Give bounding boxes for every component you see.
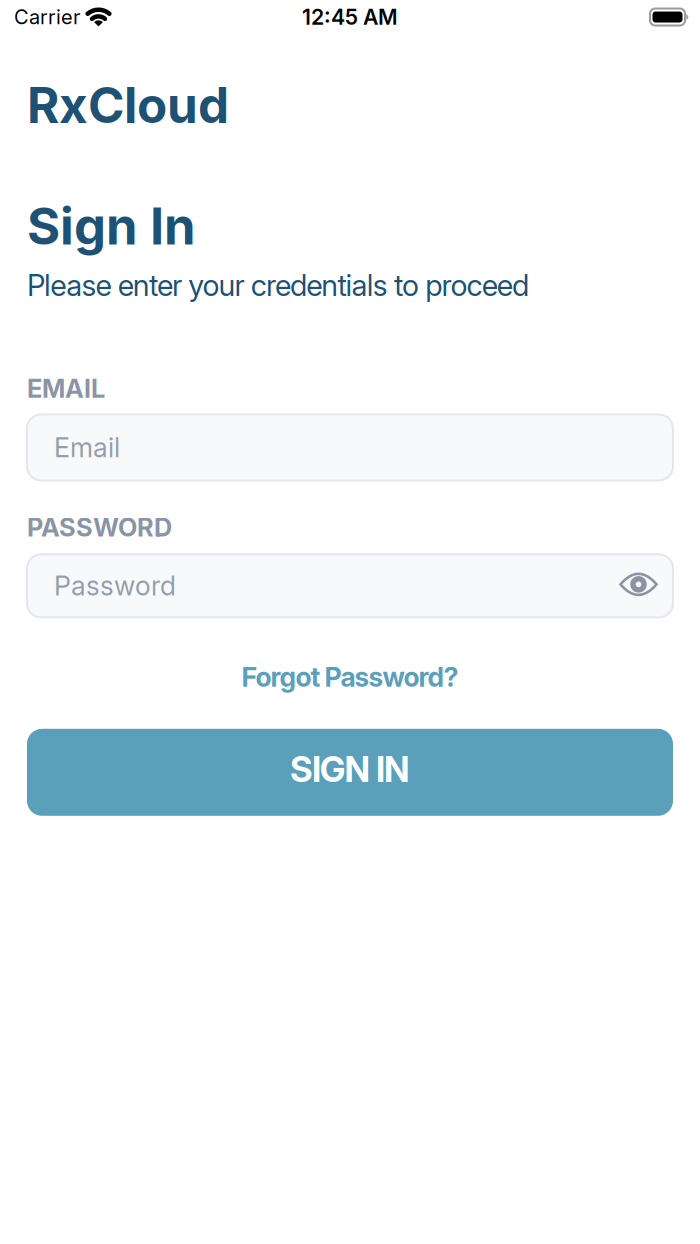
staticText: Carrier [14,5,80,29]
staticText: PASSWORD [27,512,172,542]
staticText: Sign In [27,196,196,256]
staticText: Password [54,570,176,602]
staticText: SIGN IN [290,749,410,790]
staticText: Email [54,432,120,463]
button[interactable]: Show password [619,573,658,596]
staticText: Forgot Password? [241,661,458,693]
staticText: Please enter your credentials to proceed [27,268,529,303]
button[interactable]: Forgot Password? [241,661,458,693]
button[interactable]: SIGN IN [27,729,673,816]
staticText: RxCloud [27,76,229,134]
button[interactable]: Password [27,554,673,617]
staticText: 12:45 AM [302,4,398,30]
button[interactable]: Email [27,414,673,480]
staticText: EMAIL [27,374,105,403]
